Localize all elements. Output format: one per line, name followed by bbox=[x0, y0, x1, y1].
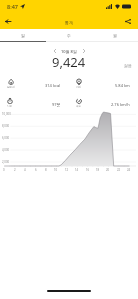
staticText: 속도 bbox=[76, 104, 82, 107]
staticText: 8:47 bbox=[7, 3, 18, 10]
staticText: 12 bbox=[65, 168, 69, 172]
staticText: 거리 bbox=[76, 85, 82, 88]
staticText: 97분 bbox=[52, 102, 61, 107]
staticText: 월 bbox=[113, 33, 117, 38]
staticText: 일 bbox=[21, 33, 25, 38]
staticText: 20 bbox=[106, 168, 110, 172]
staticText: 4 bbox=[24, 168, 26, 172]
staticText: 2.76 km/h bbox=[111, 102, 130, 107]
staticText: 10 bbox=[54, 168, 58, 172]
staticText: 16 bbox=[86, 168, 90, 172]
staticText: 10월 8일 bbox=[61, 49, 77, 54]
button[interactable]: 칼로리 bbox=[0, 76, 69, 95]
staticText: 6,000 bbox=[2, 136, 10, 140]
staticText: 14 bbox=[75, 168, 79, 172]
button[interactable]: 월 bbox=[92, 30, 138, 42]
staticText: 24 bbox=[127, 168, 131, 172]
button[interactable]: 일 bbox=[0, 30, 46, 42]
staticText: 주 bbox=[67, 33, 71, 38]
staticText: 2,000 bbox=[2, 160, 10, 164]
button[interactable]: Back bbox=[0, 14, 16, 29]
button[interactable]: 시간 bbox=[0, 95, 69, 114]
staticText: 0 bbox=[3, 168, 5, 172]
staticText: 5.84 km bbox=[115, 83, 130, 88]
staticText: 걸음 bbox=[124, 63, 132, 68]
button[interactable]: Previous day bbox=[48, 46, 61, 56]
button[interactable]: 주 bbox=[46, 30, 92, 42]
staticText: 4,000 bbox=[2, 148, 10, 152]
staticText: 2 bbox=[14, 168, 16, 172]
staticText: 22 bbox=[117, 168, 121, 172]
staticText: 314 kcal bbox=[45, 83, 61, 88]
staticText: 9,424 bbox=[52, 53, 86, 71]
button[interactable]: Share bbox=[120, 14, 136, 29]
staticText: 8,000 bbox=[2, 124, 10, 128]
staticText: 6 bbox=[35, 168, 37, 172]
staticText: 통계 bbox=[65, 20, 73, 25]
staticText: 시간 bbox=[7, 104, 13, 107]
staticText: 18 bbox=[96, 168, 100, 172]
button[interactable]: 속도 bbox=[69, 95, 138, 114]
button[interactable]: Next day bbox=[77, 46, 90, 56]
staticText: 칼로리 bbox=[7, 85, 15, 88]
staticText: 8 bbox=[45, 168, 47, 172]
staticText: 10,000 bbox=[2, 112, 11, 116]
button[interactable]: 거리 bbox=[69, 76, 138, 95]
